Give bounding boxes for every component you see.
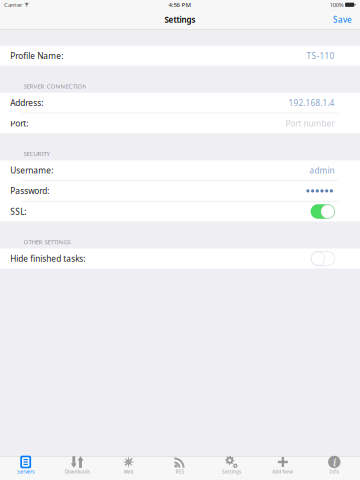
staticText: Username: xyxy=(10,165,53,176)
staticText: Password: xyxy=(10,185,49,197)
staticText: SECURITY xyxy=(23,150,49,158)
staticText: admin xyxy=(309,165,334,176)
staticText: Port number xyxy=(285,118,334,129)
staticText: RSS xyxy=(175,469,184,475)
staticText: Address: xyxy=(10,97,43,108)
staticText: Info xyxy=(329,469,339,475)
button[interactable]: Add New xyxy=(257,456,308,480)
button[interactable]: Web xyxy=(103,456,154,480)
staticText: Web xyxy=(124,469,134,475)
staticText: Add New xyxy=(272,469,293,475)
staticText: 192.168.1.4 xyxy=(288,97,334,108)
button[interactable]: Servers xyxy=(0,456,51,480)
button[interactable]: Hide finished tasks: xyxy=(311,251,335,266)
button[interactable]: Downloads xyxy=(51,456,103,480)
button[interactable]: i xyxy=(309,456,360,480)
staticText: 100% xyxy=(330,1,344,9)
staticText: SERVER CONNECTION xyxy=(23,82,87,90)
staticText: 4:56 PM xyxy=(168,1,191,9)
staticText: Downloads xyxy=(65,469,90,475)
button[interactable]: Settings xyxy=(206,456,257,480)
staticText: Profile Name: xyxy=(10,50,63,61)
staticText: TS-110 xyxy=(306,50,334,61)
button[interactable]: SSL: xyxy=(311,204,335,219)
staticText: Servers xyxy=(17,469,34,475)
staticText: OTHER SETTINGS xyxy=(23,238,70,246)
staticText: Carrier xyxy=(4,1,22,9)
staticText: Settings xyxy=(164,14,195,25)
staticText: Settings xyxy=(222,469,241,475)
staticText: Hide finished tasks: xyxy=(10,253,85,264)
staticText: i xyxy=(333,454,336,470)
staticText: SSL: xyxy=(10,206,26,217)
button[interactable]: RSS xyxy=(154,456,206,480)
staticText: Save xyxy=(333,14,352,25)
button[interactable]: Save xyxy=(325,10,360,29)
staticText: Port: xyxy=(10,118,28,129)
